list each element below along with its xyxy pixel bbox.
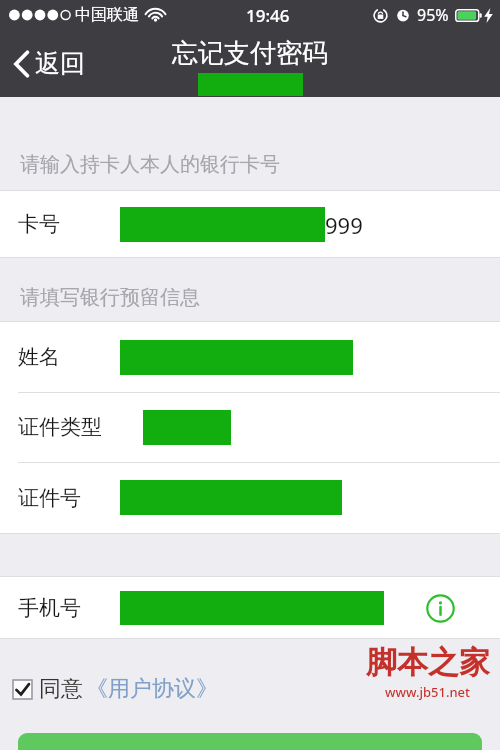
staticText: 《用户协议》 bbox=[86, 675, 218, 703]
staticText: 卡号 bbox=[18, 211, 60, 237]
staticText: 95% bbox=[417, 4, 449, 26]
button[interactable]: 返回 bbox=[10, 40, 89, 87]
staticText: 返回 bbox=[35, 48, 85, 79]
staticText: 19:46 bbox=[246, 4, 290, 27]
button[interactable]: 姓名 bbox=[0, 322, 500, 392]
staticText: www.jb51.net bbox=[385, 683, 471, 701]
button[interactable]: 手机号说明 bbox=[420, 588, 460, 628]
staticText: 忘记支付密码 bbox=[172, 37, 328, 70]
button[interactable]: 证件类型 bbox=[0, 392, 500, 462]
staticText: 999 bbox=[325, 210, 363, 240]
staticText: 同意 bbox=[39, 675, 83, 703]
staticText: 中国联通 bbox=[75, 5, 139, 25]
staticText: 证件号 bbox=[18, 485, 81, 511]
staticText: 请填写银行预留信息 bbox=[20, 285, 200, 310]
button[interactable]: 证件号 bbox=[0, 462, 500, 533]
staticText: 请输入持卡人本人的银行卡号 bbox=[20, 152, 280, 177]
button[interactable]: 卡号 bbox=[0, 191, 500, 257]
staticText: 脚本之家 bbox=[366, 643, 490, 682]
button[interactable]: 同意 bbox=[13, 675, 218, 703]
staticText: 证件类型 bbox=[18, 414, 102, 440]
button[interactable]: 手机号 bbox=[0, 577, 500, 638]
button[interactable] bbox=[18, 733, 482, 750]
staticText: 手机号 bbox=[18, 595, 81, 621]
staticText: 姓名 bbox=[18, 344, 60, 370]
